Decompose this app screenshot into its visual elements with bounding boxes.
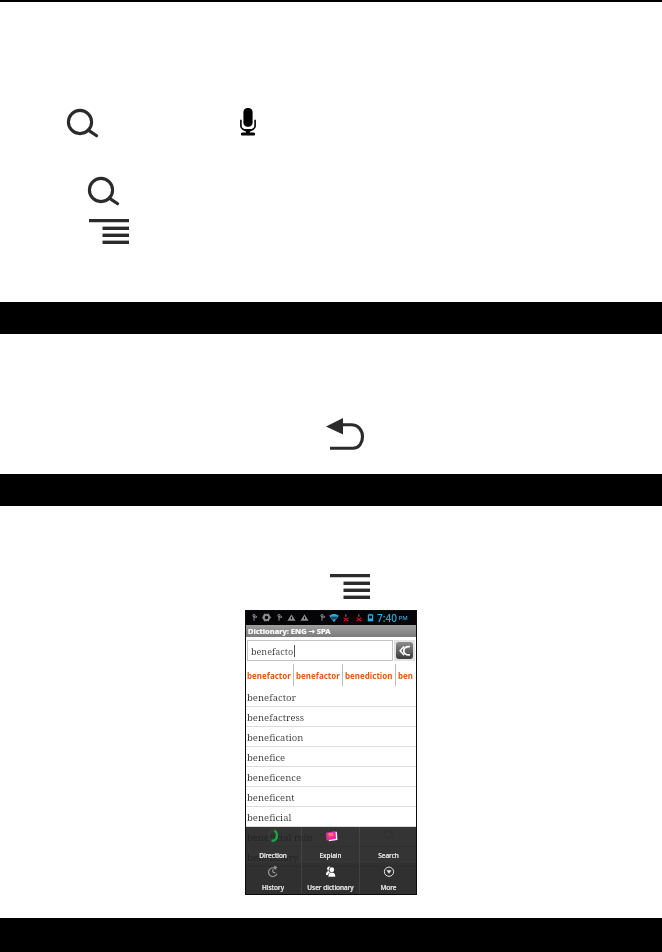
button[interactable]: Swap languages	[396, 642, 413, 659]
button[interactable]: User dictionary	[302, 863, 359, 895]
button[interactable]: benefactress	[245, 707, 417, 727]
button[interactable]: Back	[324, 415, 366, 451]
staticText: History	[262, 883, 284, 892]
button[interactable]: benefacto	[251, 640, 393, 661]
staticText: 7:40	[377, 611, 397, 625]
button[interactable]: benefactor	[247, 670, 291, 681]
button[interactable]: Menu	[328, 571, 372, 601]
button[interactable]: Direction	[245, 827, 301, 863]
staticText: benefactress	[247, 711, 305, 724]
staticText: benefactor	[247, 691, 296, 704]
staticText: beneficial rain	[247, 831, 313, 844]
staticText: ben	[398, 670, 414, 681]
staticText: Search	[378, 851, 399, 860]
button[interactable]: beneficence	[245, 767, 417, 787]
button[interactable]: benefactor	[245, 687, 417, 707]
staticText: Explain	[319, 851, 342, 860]
staticText: beneficence	[247, 771, 302, 784]
button[interactable]: Voice search	[238, 106, 258, 138]
button[interactable]: Search	[87, 175, 125, 207]
button[interactable]: Search	[66, 107, 104, 139]
staticText: benefice	[247, 751, 286, 764]
staticText: PM	[397, 614, 408, 622]
button[interactable]: benefication	[245, 727, 417, 747]
staticText: Direction	[259, 851, 287, 860]
staticText: benefacto	[251, 645, 294, 657]
button[interactable]: History	[245, 863, 301, 895]
staticText: benefication	[247, 731, 304, 744]
staticText: beneficiary	[247, 851, 299, 864]
button[interactable]: benefice	[245, 747, 417, 767]
staticText: beneficent	[247, 791, 295, 804]
button[interactable]: Search	[360, 827, 417, 863]
button[interactable]: beneficent	[245, 787, 417, 807]
staticText: User dictionary	[307, 883, 354, 892]
button[interactable]: beneficial	[245, 807, 417, 827]
staticText: More	[380, 883, 397, 892]
staticText: Dictionary: ENG → SPA	[248, 626, 331, 636]
button[interactable]: Explain	[302, 827, 359, 863]
button[interactable]: More	[360, 863, 417, 895]
button[interactable]: benediction	[345, 670, 393, 681]
staticText: benefactor	[247, 670, 291, 681]
staticText: benediction	[345, 670, 393, 681]
button[interactable]: benefactor	[296, 670, 340, 681]
staticText: benefactor	[296, 670, 340, 681]
button[interactable]: ben	[398, 670, 414, 681]
staticText: beneficial	[247, 811, 292, 824]
button[interactable]: Menu	[87, 216, 131, 246]
